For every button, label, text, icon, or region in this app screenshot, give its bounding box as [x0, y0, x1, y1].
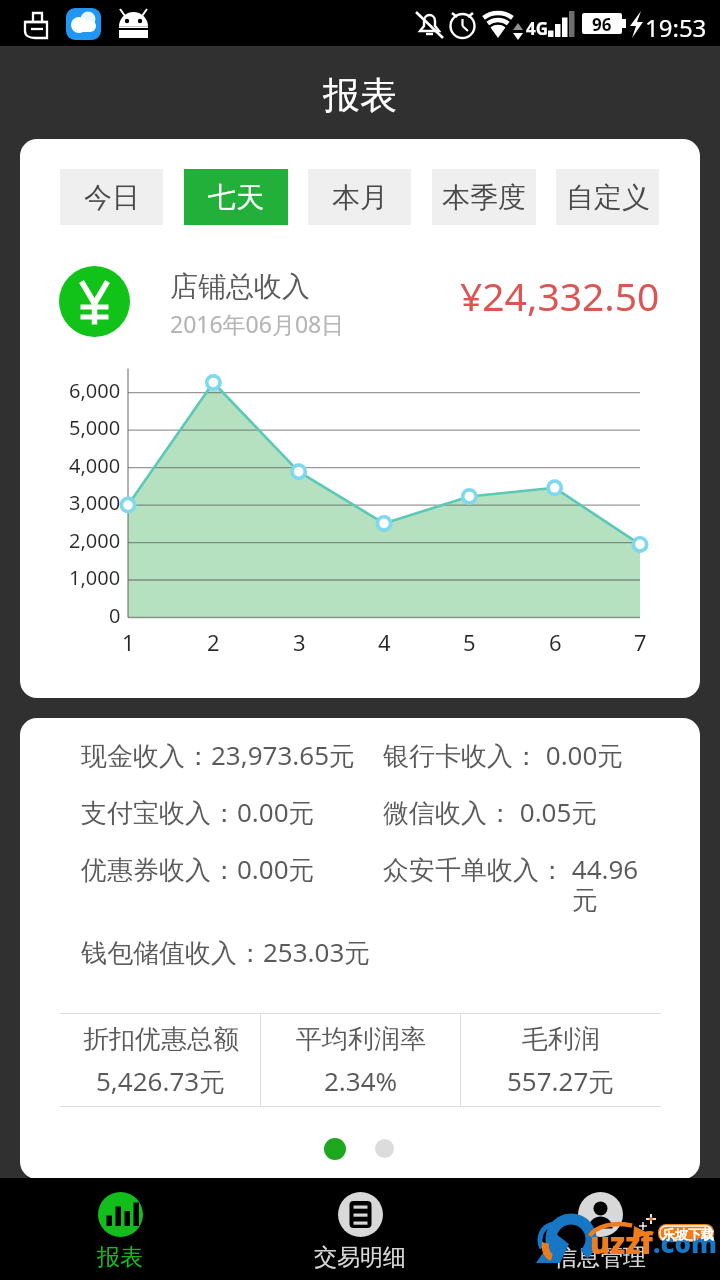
staticText: 今日 — [84, 180, 140, 215]
staticText: 店铺总收入 — [170, 269, 310, 304]
staticText: 自定义 — [566, 180, 650, 215]
staticText: 交易明细 — [314, 1243, 406, 1272]
staticText: 信息管理 — [554, 1243, 646, 1272]
staticText: .com — [653, 1225, 718, 1260]
staticText: 19:53 — [645, 11, 707, 44]
other: 信息管理 — [578, 1192, 623, 1237]
staticText: 2,000 — [69, 527, 121, 554]
staticText: 96 — [592, 13, 612, 34]
button[interactable]: 本季度 — [432, 169, 536, 225]
staticText: 报表 — [97, 1243, 143, 1272]
staticText: 1,000 — [69, 564, 121, 591]
staticText: 3 — [293, 627, 306, 657]
staticText: 报表 — [323, 72, 397, 119]
other: 报表 — [98, 1192, 143, 1237]
staticText: 现金收入：23,973.65元 — [81, 737, 356, 773]
staticText: 优惠券收入：0.00元 — [81, 851, 315, 887]
staticText: 6,000 — [69, 377, 121, 404]
staticText: 元 — [572, 884, 598, 917]
staticText: 毛利润 — [522, 1023, 600, 1056]
staticText: 平均利润率 — [296, 1023, 426, 1056]
button[interactable]: 自定义 — [556, 169, 659, 225]
staticText: 4 — [378, 627, 391, 657]
button[interactable]: 今日 — [60, 169, 163, 225]
staticText: 4,000 — [69, 452, 121, 479]
staticText: 5 — [463, 627, 476, 657]
staticText: 557.27元 — [507, 1063, 615, 1099]
staticText: 银行卡收入： 0.00元 — [383, 737, 624, 773]
button[interactable]: 七天 — [184, 169, 288, 225]
button[interactable]: 本月 — [308, 169, 411, 225]
staticText: 7 — [634, 627, 647, 657]
staticText: 众安千单收入： 44.96 — [383, 851, 639, 887]
staticText: 5,426.73元 — [96, 1063, 226, 1099]
staticText: 3,000 — [69, 489, 121, 516]
staticText: 支付宝收入：0.00元 — [81, 794, 315, 830]
staticText: 2 — [207, 627, 220, 657]
staticText: 6 — [549, 627, 562, 657]
staticText: 5,000 — [69, 414, 121, 441]
staticText: 乐坡下载 — [662, 1226, 714, 1242]
button[interactable]: 报表 — [0, 1178, 240, 1280]
other: 交易明细 — [338, 1192, 383, 1237]
staticText: 钱包储值收入：253.03元 — [81, 934, 371, 970]
staticText: 本月 — [332, 180, 388, 215]
staticText: 1 — [122, 627, 135, 657]
staticText: 0 — [109, 602, 121, 629]
button[interactable]: 信息管理 — [480, 1178, 720, 1280]
staticText: 2.34% — [324, 1063, 398, 1098]
staticText: 2016年06月08日 — [170, 308, 345, 339]
staticText: 4G — [526, 17, 549, 40]
staticText: uzzf — [590, 1222, 653, 1263]
staticText: 七天 — [208, 180, 264, 215]
button[interactable]: 交易明细 — [240, 1178, 480, 1280]
staticText: 本季度 — [442, 180, 526, 215]
staticText: 折扣优惠总额 — [83, 1023, 239, 1056]
staticText: ¥24,332.50 — [460, 269, 660, 322]
staticText: 微信收入： 0.05元 — [383, 794, 598, 830]
